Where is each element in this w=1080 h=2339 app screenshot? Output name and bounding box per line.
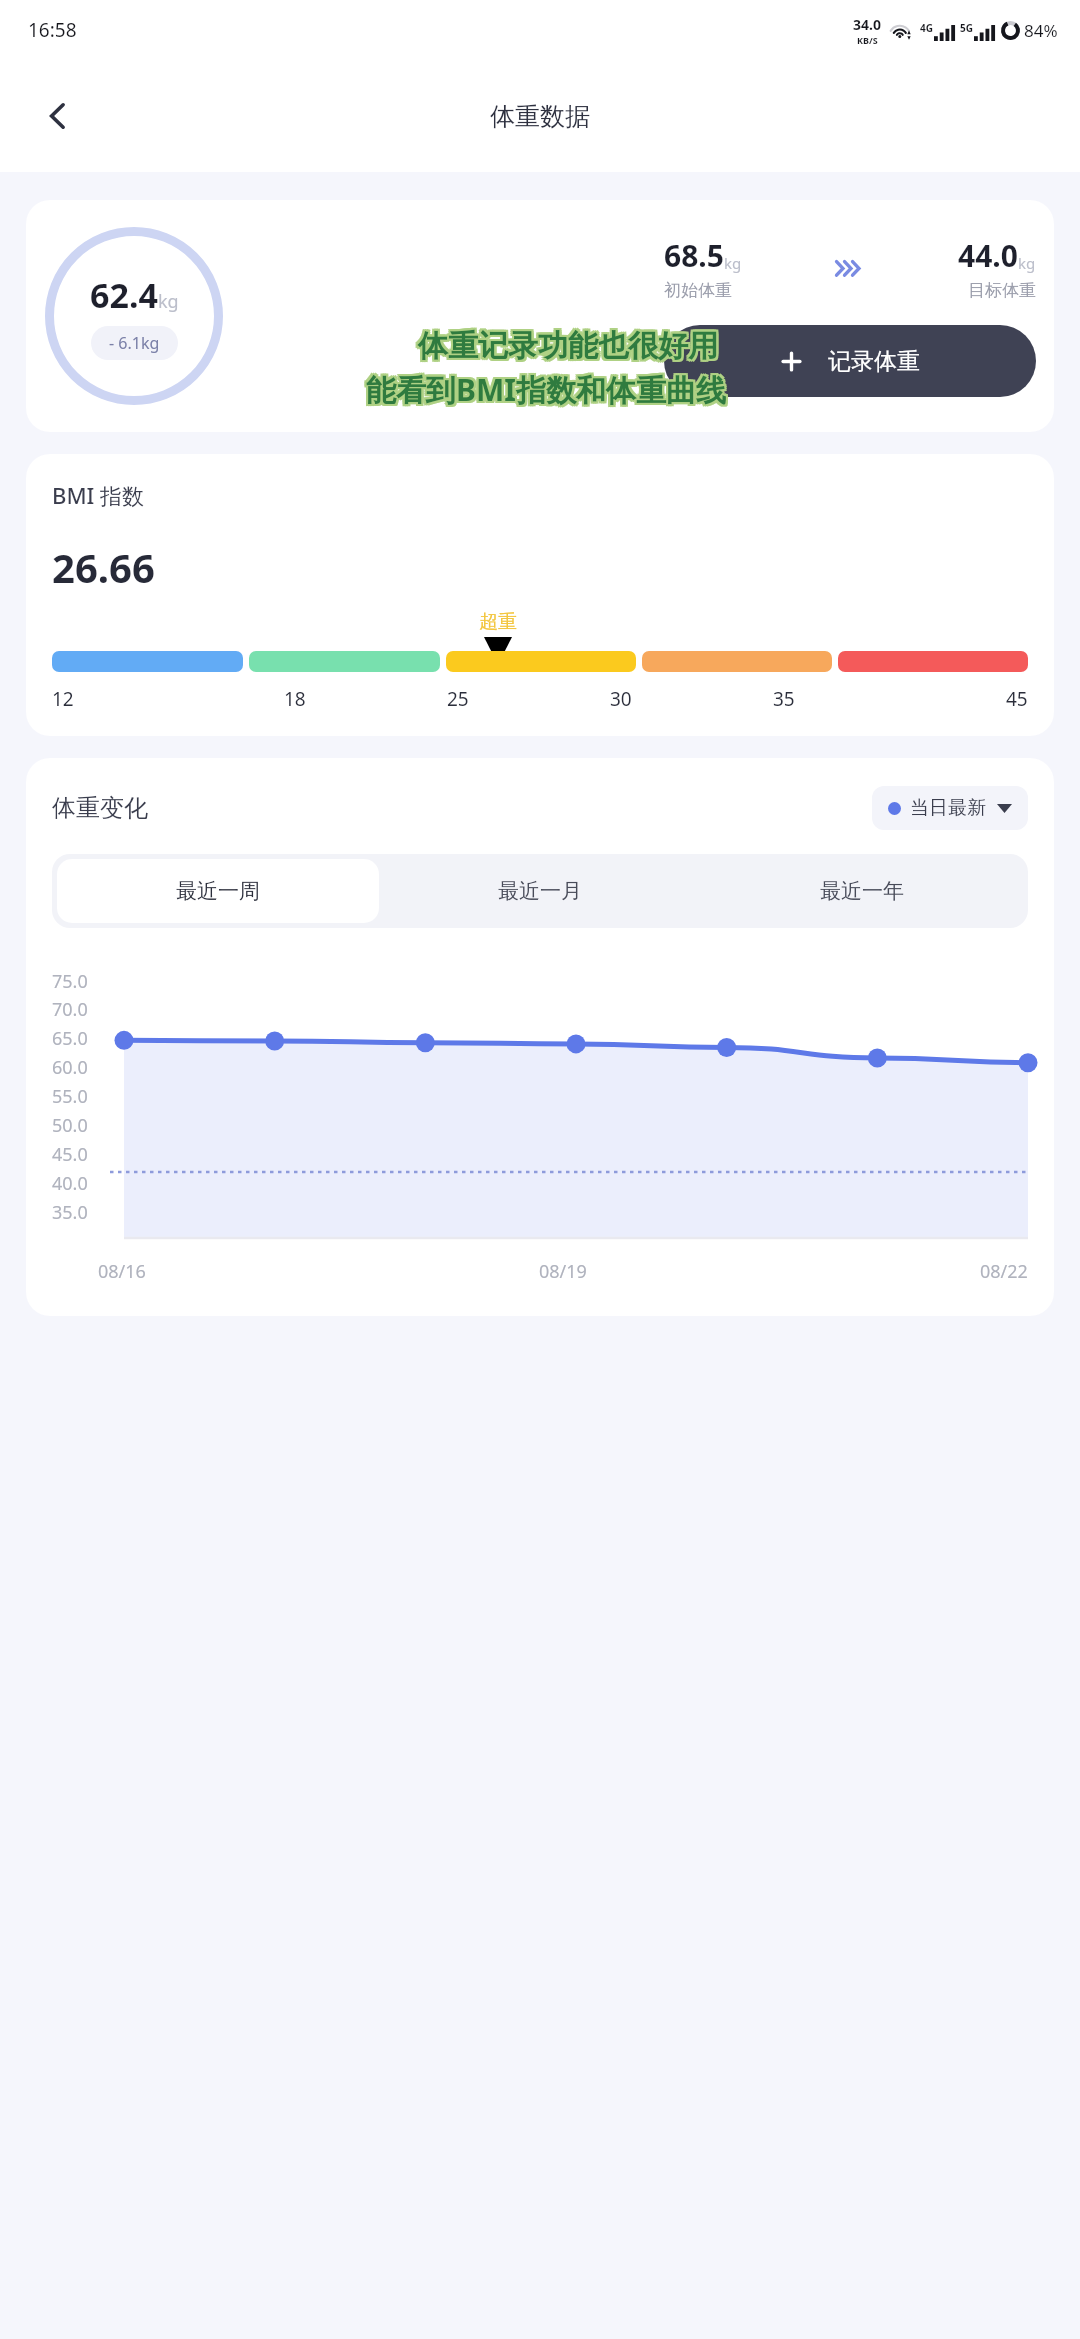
staticText: 30 xyxy=(610,686,632,712)
staticText: 25 xyxy=(447,686,469,712)
staticText: 75.0 xyxy=(52,969,88,994)
staticText: 初始体重 xyxy=(664,280,732,301)
button[interactable]: 最近一周 xyxy=(57,859,379,923)
button[interactable]: Back xyxy=(28,86,88,146)
staticText: 34.0 xyxy=(853,15,881,34)
staticText: 体重记录功能也很好用 xyxy=(420,325,720,363)
staticText: 体重记录功能也很好用 xyxy=(418,327,718,365)
staticText: 65.0 xyxy=(52,1026,88,1051)
staticText: 44.0 xyxy=(958,235,1018,276)
staticText: 能看到BMI指数和体重曲线 xyxy=(368,371,728,412)
staticText: 体重记录功能也很好用 xyxy=(416,327,716,365)
staticText: 能看到BMI指数和体重曲线 xyxy=(364,371,724,412)
staticText: 08/19 xyxy=(539,1259,587,1284)
button[interactable]: 记录体重 xyxy=(664,325,1036,397)
staticText: 能看到BMI指数和体重曲线 xyxy=(366,367,726,408)
staticText: 体重变化 xyxy=(52,793,148,823)
staticText: 超重 xyxy=(479,610,517,634)
staticText: 40.0 xyxy=(52,1171,88,1196)
staticText: 能看到BMI指数和体重曲线 xyxy=(366,369,726,410)
staticText: 35 xyxy=(773,686,795,712)
staticText: 能看到BMI指数和体重曲线 xyxy=(366,371,726,412)
staticText: - 6.1kg xyxy=(109,332,160,354)
staticText: 体重记录功能也很好用 xyxy=(418,325,718,363)
staticText: 18 xyxy=(284,686,306,712)
staticText: 体重记录功能也很好用 xyxy=(420,329,720,367)
staticText: BMI 指数 xyxy=(52,480,145,510)
staticText: 16:58 xyxy=(28,17,77,43)
staticText: 45 xyxy=(1006,686,1028,712)
button[interactable]: 当日最新 xyxy=(872,786,1028,830)
staticText: 50.0 xyxy=(52,1113,88,1138)
staticText: 84% xyxy=(1024,19,1058,42)
staticText: 当日最新 xyxy=(910,796,986,820)
button[interactable]: 最近一月 xyxy=(379,859,701,923)
staticText: 08/16 xyxy=(98,1259,146,1284)
staticText: 能看到BMI指数和体重曲线 xyxy=(364,369,724,410)
staticText: kg xyxy=(724,253,742,273)
staticText: 08/22 xyxy=(980,1259,1028,1284)
staticText: 能看到BMI指数和体重曲线 xyxy=(368,367,728,408)
staticText: 能看到BMI指数和体重曲线 xyxy=(368,369,728,410)
staticText: 最近一月 xyxy=(498,878,582,904)
staticText: kg xyxy=(1018,253,1036,273)
staticText: 体重记录功能也很好用 xyxy=(416,325,716,363)
staticText: 体重记录功能也很好用 xyxy=(416,329,716,367)
staticText: 35.0 xyxy=(52,1200,88,1225)
staticText: 26.66 xyxy=(52,540,155,594)
staticText: KB/S xyxy=(857,34,878,46)
staticText: 68.5 xyxy=(664,235,724,276)
staticText: 能看到BMI指数和体重曲线 xyxy=(364,367,724,408)
button[interactable]: 最近一年 xyxy=(701,859,1023,923)
staticText: 记录体重 xyxy=(828,347,920,376)
staticText: 体重记录功能也很好用 xyxy=(420,327,720,365)
staticText: 体重数据 xyxy=(490,101,590,132)
staticText: 45.0 xyxy=(52,1142,88,1167)
staticText: 最近一年 xyxy=(820,878,904,904)
staticText: kg xyxy=(158,289,179,314)
staticText: 体重记录功能也很好用 xyxy=(418,329,718,367)
staticText: 目标体重 xyxy=(968,280,1036,301)
staticText: 5G xyxy=(960,21,973,35)
staticText: 70.0 xyxy=(52,997,88,1022)
staticText: 12 xyxy=(52,686,74,712)
staticText: 60.0 xyxy=(52,1055,88,1080)
staticText: 最近一周 xyxy=(176,878,260,904)
staticText: 55.0 xyxy=(52,1084,88,1109)
staticText: 62.4 xyxy=(90,272,158,318)
staticText: 4G xyxy=(920,21,933,35)
